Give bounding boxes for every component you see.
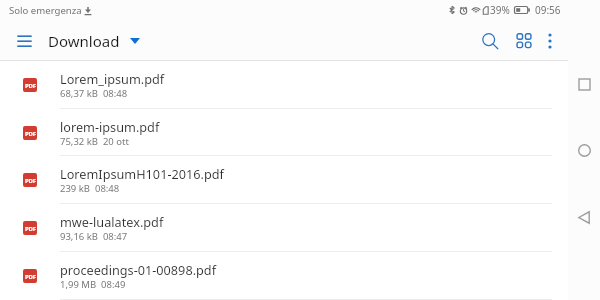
button[interactable]: More options (539, 30, 561, 52)
button[interactable]: PDF (0, 204, 568, 252)
staticText: 09:56 (535, 3, 561, 17)
staticText: PDF (25, 82, 36, 90)
button[interactable]: PDF (0, 156, 568, 204)
button[interactable]: Grid view (513, 30, 535, 52)
button[interactable]: Search (479, 30, 501, 52)
staticText: Solo emergenza (9, 4, 82, 17)
staticText: lorem-ipsum.pdf (60, 118, 160, 135)
staticText: proceedings-01-00898.pdf (60, 261, 217, 278)
button[interactable]: PDF (0, 109, 568, 156)
staticText: 239 kB 08:48 (60, 182, 120, 195)
staticText: mwe-lualatex.pdf (60, 213, 164, 230)
staticText: Lorem_ipsum.pdf (60, 70, 165, 87)
button[interactable]: Download (48, 31, 120, 51)
button[interactable]: Change folder (128, 31, 142, 51)
staticText: 1,99 MB 08:49 (60, 278, 126, 291)
staticText: PDF (25, 225, 36, 233)
button[interactable]: Back (571, 204, 597, 230)
button[interactable]: PDF (0, 61, 568, 109)
staticText: 75,32 kB 20 ott (60, 135, 129, 148)
staticText: LoremIpsumH101-2016.pdf (60, 165, 224, 182)
button[interactable]: PDF (0, 252, 568, 300)
staticText: 68,37 kB 08:48 (60, 87, 128, 100)
button[interactable]: Menu (16, 29, 32, 53)
staticText: 39% (490, 3, 510, 17)
button[interactable]: Home (571, 137, 597, 163)
staticText: PDF (25, 177, 36, 185)
button[interactable]: Recents (571, 71, 597, 97)
staticText: 93,16 kB 08:47 (60, 230, 128, 243)
staticText: PDF (25, 130, 36, 138)
staticText: PDF (25, 273, 36, 281)
